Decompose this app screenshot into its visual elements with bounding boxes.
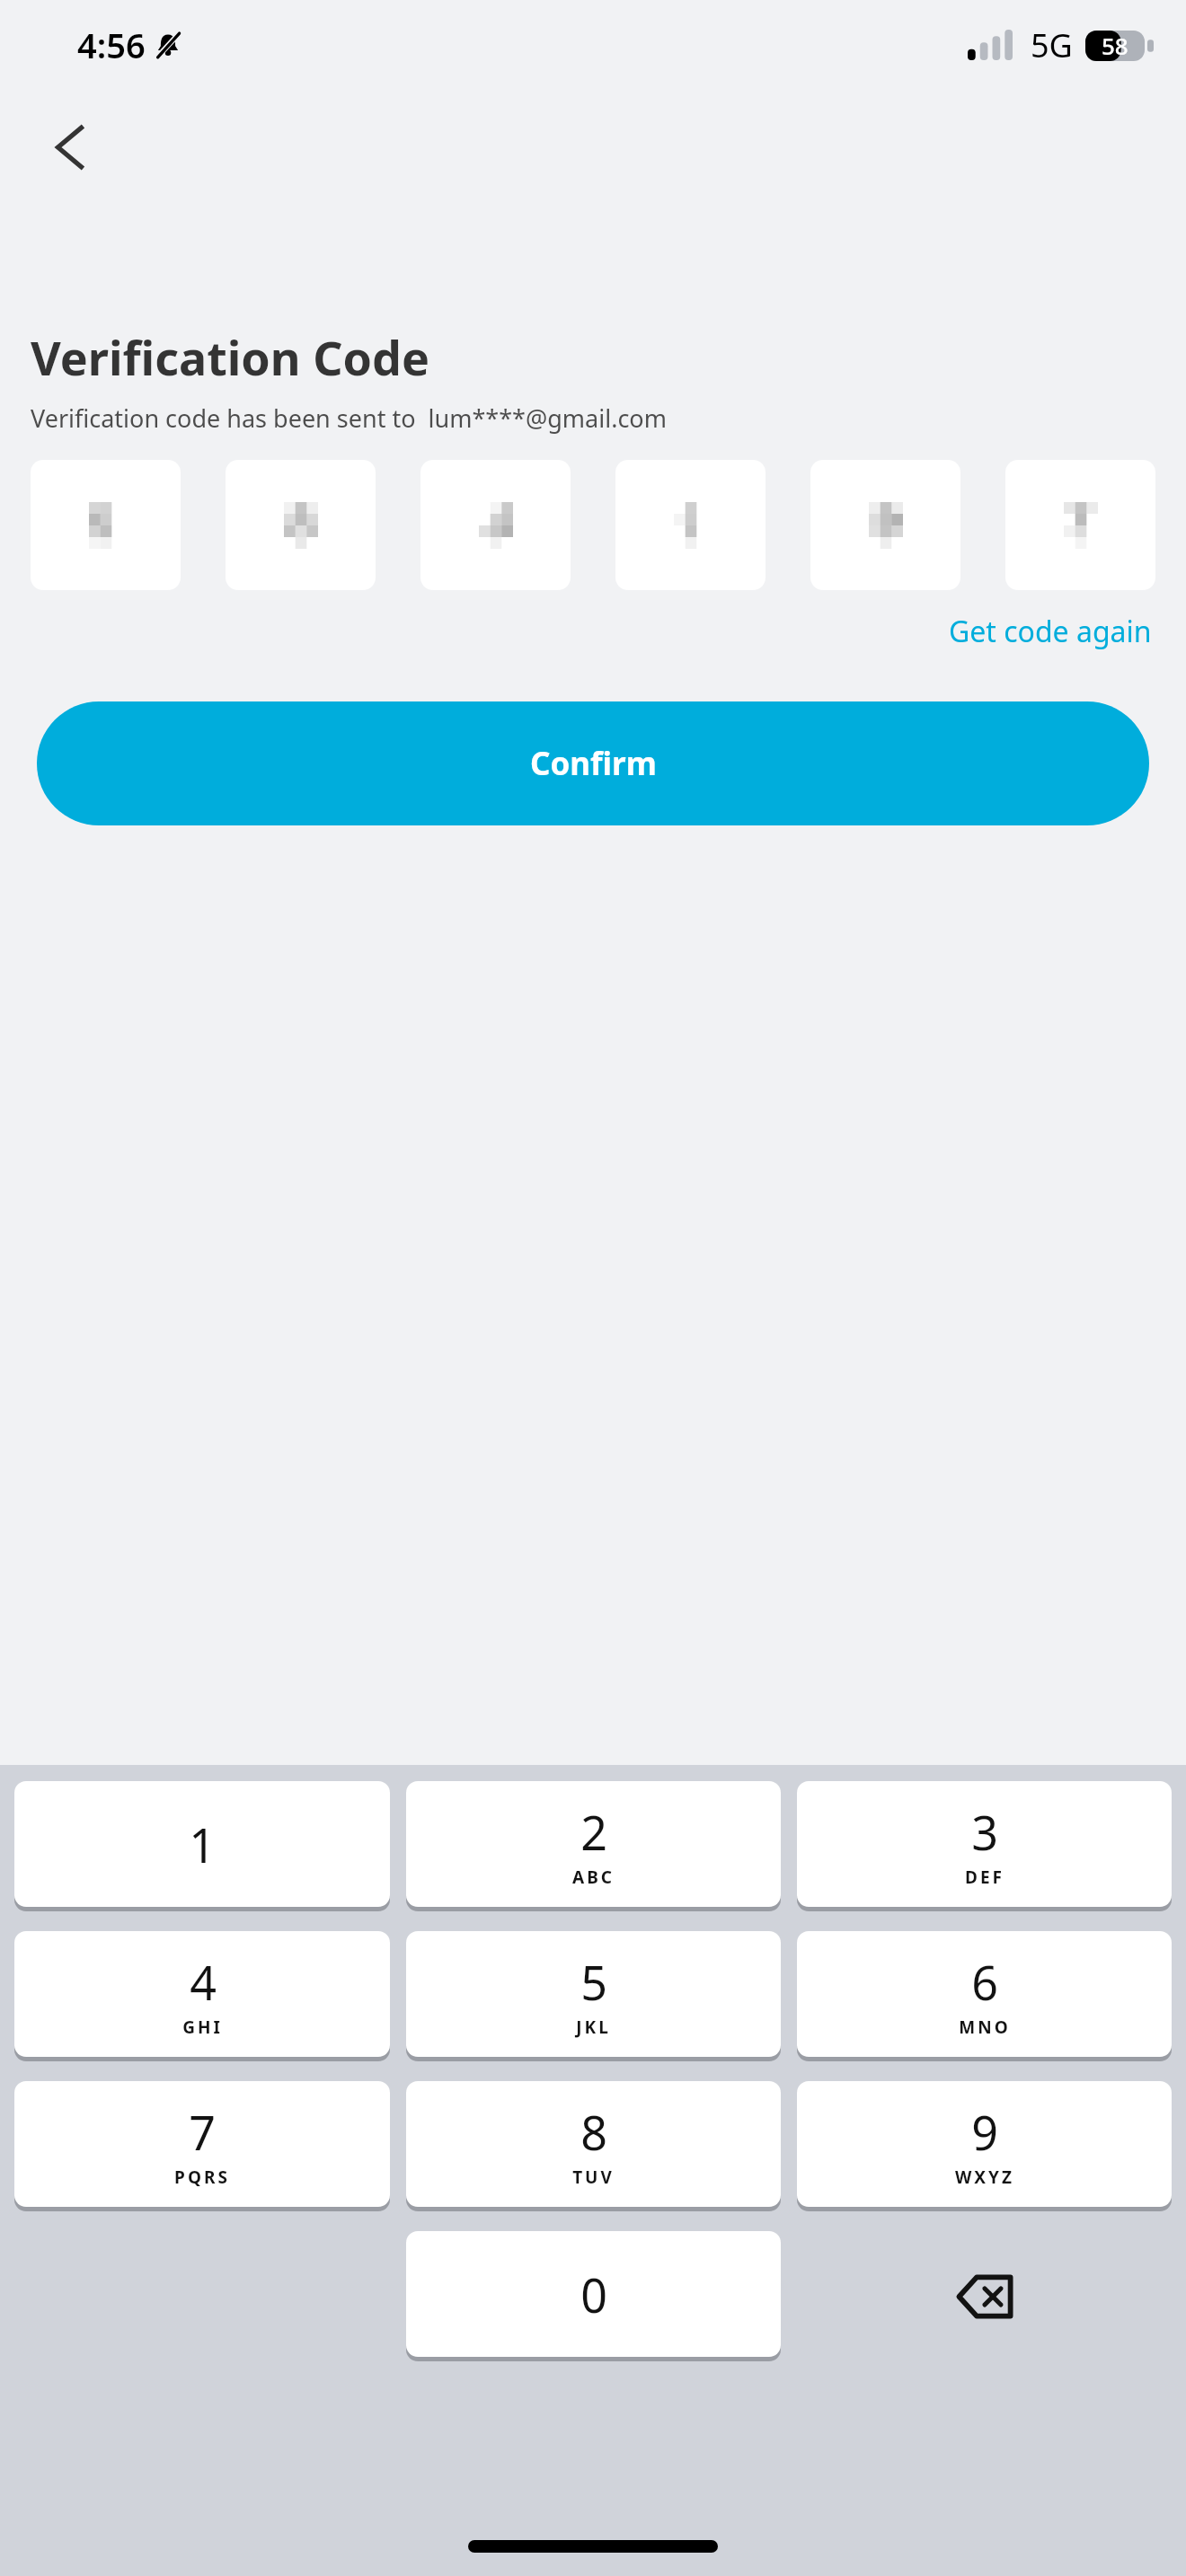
staticText: GHI (182, 2016, 223, 2039)
button[interactable]: Back (27, 104, 113, 190)
staticText: 6 (971, 1950, 998, 2014)
staticText: 4 (190, 1950, 217, 2014)
staticText: WXYZ (955, 2166, 1014, 2189)
staticText: 8 (580, 2100, 607, 2164)
staticText: ABC (572, 1866, 615, 1889)
staticText: 7 (189, 2100, 216, 2164)
button[interactable]: Backspace (797, 2231, 1172, 2361)
button[interactable]: 4 (14, 1931, 390, 2061)
button[interactable]: Code digit 1 (31, 460, 181, 590)
button[interactable]: 8 (406, 2081, 781, 2211)
button[interactable]: Confirm (37, 701, 1149, 825)
button[interactable]: 2 (406, 1781, 781, 1911)
staticText: 0 (580, 2263, 607, 2326)
button[interactable]: 9 (797, 2081, 1172, 2211)
button[interactable]: Code digit 2 (226, 460, 376, 590)
staticText: Verification Code (31, 325, 429, 389)
staticText: 4:56 (77, 22, 146, 68)
button[interactable]: 3 (797, 1781, 1172, 1911)
staticText: 9 (971, 2100, 998, 2164)
button[interactable]: Code digit 6 (1005, 460, 1155, 590)
button[interactable]: Get code again (945, 604, 1155, 658)
staticText: 5 (580, 1950, 607, 2014)
button[interactable]: Code digit 5 (810, 460, 960, 590)
button[interactable]: 5 (406, 1931, 781, 2061)
staticText: Confirm (530, 742, 657, 785)
staticText: DEF (965, 1866, 1005, 1889)
button[interactable]: 0 (406, 2231, 781, 2361)
staticText: JKL (576, 2016, 611, 2039)
button[interactable]: 7 (14, 2081, 390, 2211)
staticText: 58 (1102, 30, 1128, 61)
button[interactable]: 1 (14, 1781, 390, 1911)
staticText: 5G (1031, 23, 1073, 67)
button[interactable]: 6 (797, 1931, 1172, 2061)
staticText: Verification code has been sent to lum**… (31, 401, 667, 435)
staticText: 1 (189, 1813, 216, 1876)
staticText: MNO (959, 2016, 1011, 2039)
staticText: 2 (580, 1800, 607, 1864)
staticText: TUV (572, 2166, 615, 2189)
staticText: Get code again (949, 612, 1152, 651)
button[interactable]: Code digit 3 (420, 460, 571, 590)
button[interactable]: Code digit 4 (615, 460, 766, 590)
staticText: PQRS (174, 2166, 230, 2189)
staticText: 3 (971, 1800, 998, 1864)
